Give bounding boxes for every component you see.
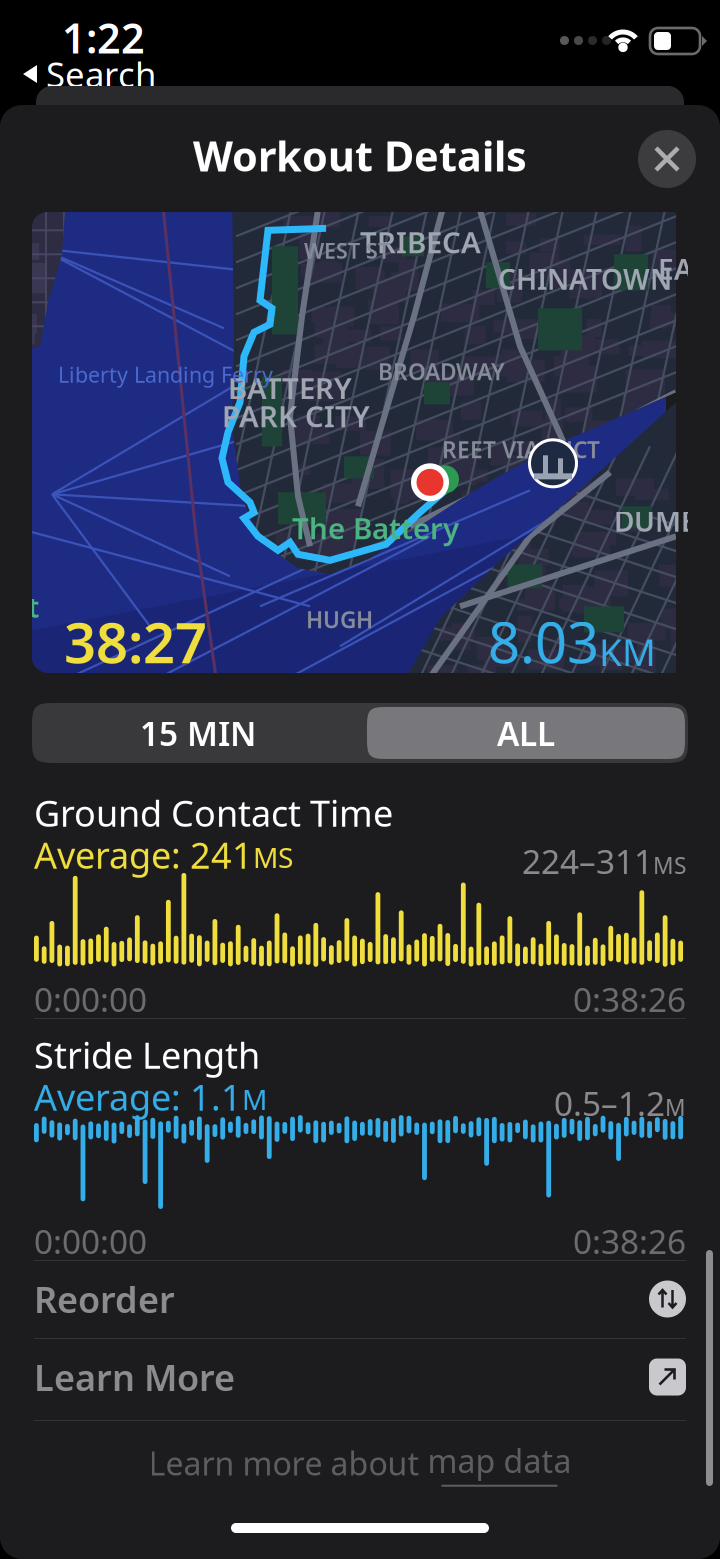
staticText: BROADWAY	[378, 356, 505, 386]
staticText: Learn more about	[148, 1442, 427, 1484]
staticText: PARK CITY	[222, 396, 370, 435]
staticText: CHINATOWN	[498, 260, 672, 297]
staticText: ALL	[497, 711, 555, 755]
staticText: 0:00:00	[34, 977, 147, 1021]
staticText: Learn More	[34, 1353, 235, 1401]
staticText: Reorder	[34, 1275, 175, 1323]
staticText: 0:00:00	[34, 1219, 147, 1263]
staticText: Workout Details	[193, 128, 527, 183]
staticText: Average: 1.1	[34, 1073, 242, 1121]
staticText: MS	[653, 850, 686, 880]
staticText: WEST ST	[304, 236, 390, 265]
staticText: nt	[10, 588, 39, 625]
button[interactable]: ALL	[364, 703, 688, 763]
button[interactable]: Reorder	[34, 1260, 686, 1338]
staticText: 1:22	[62, 10, 145, 65]
staticText: MS	[253, 839, 293, 876]
staticText: 0.5–1.2	[554, 1081, 665, 1125]
staticText: Stride Length	[34, 1031, 260, 1079]
staticText: The Battery	[292, 508, 459, 547]
staticText: Ground Contact Time	[34, 789, 393, 837]
staticText: Search	[46, 51, 156, 97]
staticText: TRIBECA	[360, 222, 481, 261]
staticText: map data	[427, 1439, 571, 1482]
staticText: REET VIADUCT	[442, 434, 600, 464]
staticText: 224–311	[522, 839, 653, 883]
staticText: 38:27	[64, 604, 207, 679]
staticText: BATTERY	[228, 368, 352, 407]
staticText: 0:38:26	[573, 1219, 686, 1263]
staticText: Average: 241	[34, 831, 253, 879]
button[interactable]: Learn more about	[34, 1435, 686, 1491]
staticText: 8.03	[488, 604, 599, 679]
staticText: DUMB	[614, 502, 699, 539]
staticText: M	[665, 1092, 686, 1122]
button[interactable]: 15 MIN	[32, 703, 364, 763]
staticText: KM	[599, 627, 656, 677]
button[interactable]: Close	[638, 130, 696, 188]
staticText: Liberty Landing Ferry	[58, 360, 273, 389]
staticText: EA	[658, 250, 693, 287]
staticText: 15 MIN	[140, 711, 256, 755]
staticText: 0:38:26	[573, 977, 686, 1021]
button[interactable]: Learn More	[34, 1338, 686, 1416]
staticText: M	[242, 1081, 267, 1118]
staticText: HUGH	[306, 604, 373, 634]
